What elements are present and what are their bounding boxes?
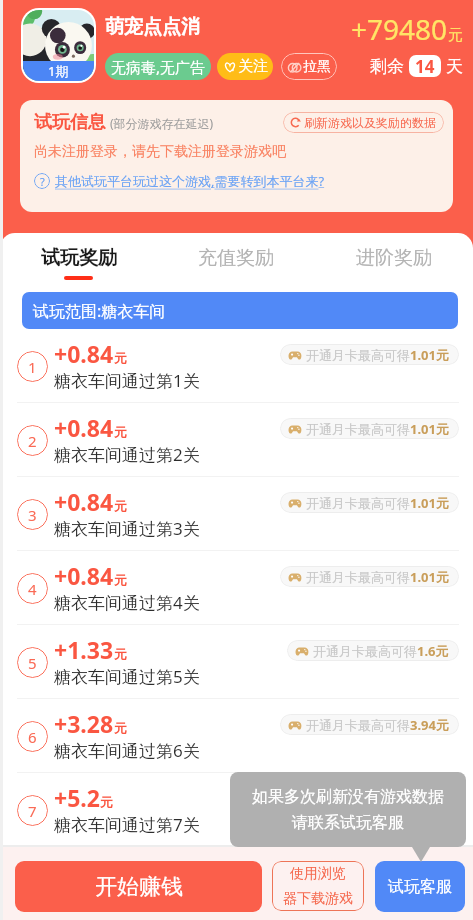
button[interactable]: 进阶奖励 — [315, 246, 473, 276]
staticText: 7 — [28, 801, 37, 821]
staticText: 剩余 — [370, 56, 404, 77]
staticText: +0.84 — [54, 486, 114, 517]
staticText: +79480 — [351, 10, 448, 48]
staticText: 如果多次刷新没有游戏数据 请联系试玩客服 — [252, 787, 444, 833]
button[interactable]: 开通月卡最高可得 — [280, 418, 459, 439]
staticText: 1.01元 — [410, 568, 449, 586]
staticText: 元 — [114, 424, 127, 440]
staticText: 元 — [114, 646, 127, 662]
staticText: 开通月卡最高可得 — [306, 495, 410, 511]
staticText: 糖衣车间通过第3关 — [54, 517, 200, 540]
staticText: 糖衣车间通过第5关 — [54, 665, 200, 688]
staticText: 开通月卡最高可得 — [306, 717, 410, 733]
staticText: 元 — [448, 26, 463, 45]
staticText: +1.33 — [54, 634, 114, 665]
button[interactable]: 7 — [0, 773, 473, 847]
button[interactable]: 使用浏览 器下载游戏 — [272, 861, 364, 911]
staticText: 充值奖励 — [198, 246, 274, 270]
staticText: 其他试玩平台玩过这个游戏,需要转到本平台来? — [55, 172, 325, 190]
staticText: 糖衣车间通过第7关 — [54, 813, 200, 836]
staticText: 拉黑 — [303, 58, 331, 76]
staticText: 2 — [28, 431, 37, 451]
staticText: 1.01元 — [410, 346, 449, 364]
staticText: 进阶奖励 — [356, 246, 432, 270]
staticText: 尚未注册登录，请先下载注册登录游戏吧 — [34, 143, 286, 161]
staticText: 元 — [100, 794, 113, 810]
staticText: 糖衣车间通过第4关 — [54, 591, 200, 614]
button[interactable]: 5 — [0, 625, 473, 698]
button[interactable]: 关注 — [217, 53, 273, 80]
staticText: 元 — [114, 350, 127, 366]
staticText: 糖衣车间通过第2关 — [54, 443, 200, 466]
button[interactable]: 试玩奖励 — [0, 246, 157, 280]
button[interactable]: 开始赚钱 — [15, 861, 262, 912]
staticText: 1 — [28, 357, 37, 377]
staticText: 3.94元 — [410, 716, 449, 734]
staticText: 使用浏览 器下载游戏 — [283, 865, 353, 907]
button[interactable]: 开通月卡最高可得 — [280, 566, 459, 587]
staticText: 5 — [28, 653, 37, 673]
staticText: +0.84 — [54, 338, 114, 369]
button[interactable]: 拉黑 — [281, 53, 337, 80]
staticText: +0.84 — [54, 412, 114, 443]
staticText: 3 — [28, 505, 37, 525]
button[interactable]: 无病毒,无广告 — [105, 53, 211, 80]
staticText: 糖衣车间通过第6关 — [54, 739, 200, 762]
staticText: 试玩范围:糖衣车间 — [33, 300, 166, 322]
button[interactable]: App icon — [23, 10, 94, 81]
staticText: 刷新游戏以及奖励的数据 — [304, 115, 436, 130]
staticText: 6 — [28, 727, 37, 747]
staticText: 试玩奖励 — [41, 246, 117, 270]
staticText: 元 — [114, 720, 127, 736]
staticText: 开通月卡最高可得 — [306, 421, 410, 437]
staticText: 开始赚钱 — [95, 873, 183, 901]
staticText: (部分游戏存在延迟) — [110, 115, 214, 131]
staticText: 1.01元 — [410, 420, 449, 438]
button[interactable]: 1 — [0, 329, 473, 402]
button[interactable]: 6 — [0, 699, 473, 772]
staticText: 开通月卡最高可得 — [306, 569, 410, 585]
button[interactable]: 开通月卡最高可得 — [280, 344, 459, 365]
button[interactable]: 4 — [0, 551, 473, 624]
staticText: 元 — [114, 572, 127, 588]
button[interactable]: 开通月卡最高可得 — [280, 714, 459, 735]
button[interactable]: 充值奖励 — [157, 246, 315, 276]
staticText: +0.84 — [54, 560, 114, 591]
staticText: 天 — [446, 56, 463, 77]
staticText: 开通月卡最高可得 — [306, 347, 410, 363]
button[interactable]: 开通月卡最高可得 — [280, 492, 459, 513]
staticText: +5.2 — [54, 782, 100, 813]
staticText: 1.01元 — [410, 494, 449, 512]
button[interactable]: 开通月卡最高可得 — [287, 640, 459, 661]
button[interactable]: 3 — [0, 477, 473, 550]
staticText: +3.28 — [54, 708, 114, 739]
staticText: 无病毒,无广告 — [111, 57, 206, 77]
staticText: 4 — [28, 579, 37, 599]
button[interactable]: 试玩范围:糖衣车间 — [22, 292, 458, 329]
button[interactable]: 刷新游戏以及奖励的数据 — [283, 112, 444, 133]
staticText: ? — [40, 174, 45, 189]
staticText: 1期 — [48, 62, 69, 80]
staticText: 14 — [415, 55, 435, 77]
staticText: 萌宠点点消 — [105, 15, 200, 39]
button[interactable]: ? — [34, 172, 325, 190]
button[interactable]: 2 — [0, 403, 473, 476]
button[interactable]: 试玩客服 — [375, 861, 465, 912]
staticText: 元 — [114, 498, 127, 514]
staticText: 关注 — [238, 57, 268, 76]
staticText: 糖衣车间通过第1关 — [54, 369, 200, 392]
staticText: 试玩信息 — [34, 111, 106, 134]
staticText: 1.6元 — [417, 642, 449, 660]
staticText: 开通月卡最高可得 — [313, 643, 417, 659]
staticText: 试玩客服 — [388, 877, 452, 897]
